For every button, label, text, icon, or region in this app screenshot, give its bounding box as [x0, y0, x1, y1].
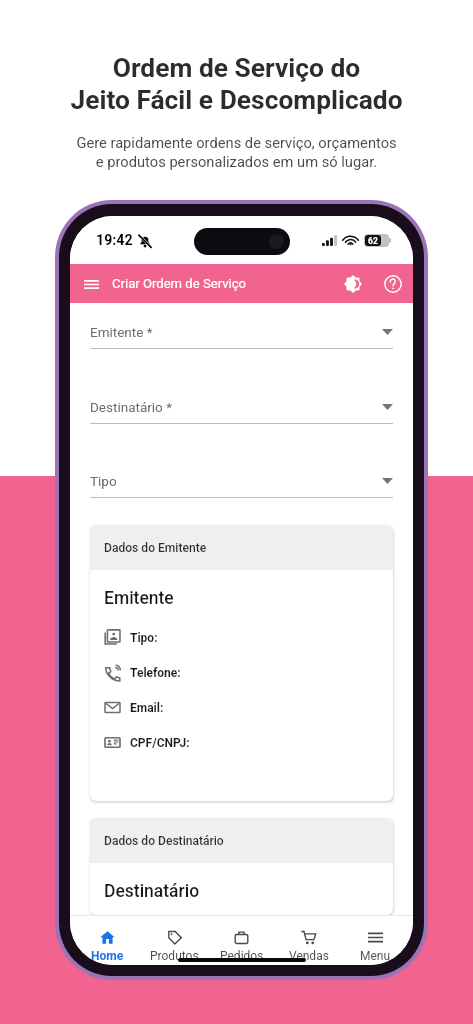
button[interactable]: Vendas	[275, 930, 342, 963]
staticText: Emitente *	[90, 324, 153, 340]
button[interactable]: Menu	[342, 930, 409, 963]
staticText: Destinatário	[104, 881, 200, 902]
staticText: Criar Ordem de Serviço	[112, 276, 247, 291]
staticText: Ordem de Serviço do Jeito Fácil e Descom…	[70, 53, 403, 115]
staticText: Email:	[130, 701, 164, 715]
button[interactable]: Produtos	[141, 930, 208, 963]
button[interactable]: Home	[74, 930, 141, 963]
button[interactable]: Menu	[77, 270, 105, 298]
staticText: Produtos	[150, 949, 199, 963]
staticText: Menu	[360, 949, 391, 963]
staticText: Tipo	[90, 473, 117, 489]
staticText: CPF/CNPJ:	[130, 736, 190, 750]
staticText: Pedidos	[220, 949, 264, 963]
staticText: Home	[91, 949, 124, 963]
staticText: Telefone:	[130, 666, 181, 680]
staticText: Emitente	[104, 588, 174, 609]
staticText: Destinatário *	[90, 399, 172, 415]
button[interactable]: Toggle dark mode	[338, 269, 368, 299]
staticText: Vendas	[289, 949, 329, 963]
staticText: 19:42	[96, 232, 133, 249]
staticText: Dados do Destinatário	[104, 834, 224, 848]
staticText: Dados do Emitente	[104, 541, 207, 555]
staticText: Gere rapidamente ordens de serviço, orça…	[76, 134, 397, 171]
button[interactable]: Help	[378, 269, 408, 299]
button[interactable]: Emitente *	[90, 324, 393, 349]
staticText: Tipo:	[130, 631, 158, 645]
button[interactable]: Tipo	[90, 473, 393, 498]
button[interactable]: Destinatário *	[90, 399, 393, 424]
button[interactable]: Pedidos	[208, 930, 275, 963]
staticText: 62	[368, 236, 378, 246]
